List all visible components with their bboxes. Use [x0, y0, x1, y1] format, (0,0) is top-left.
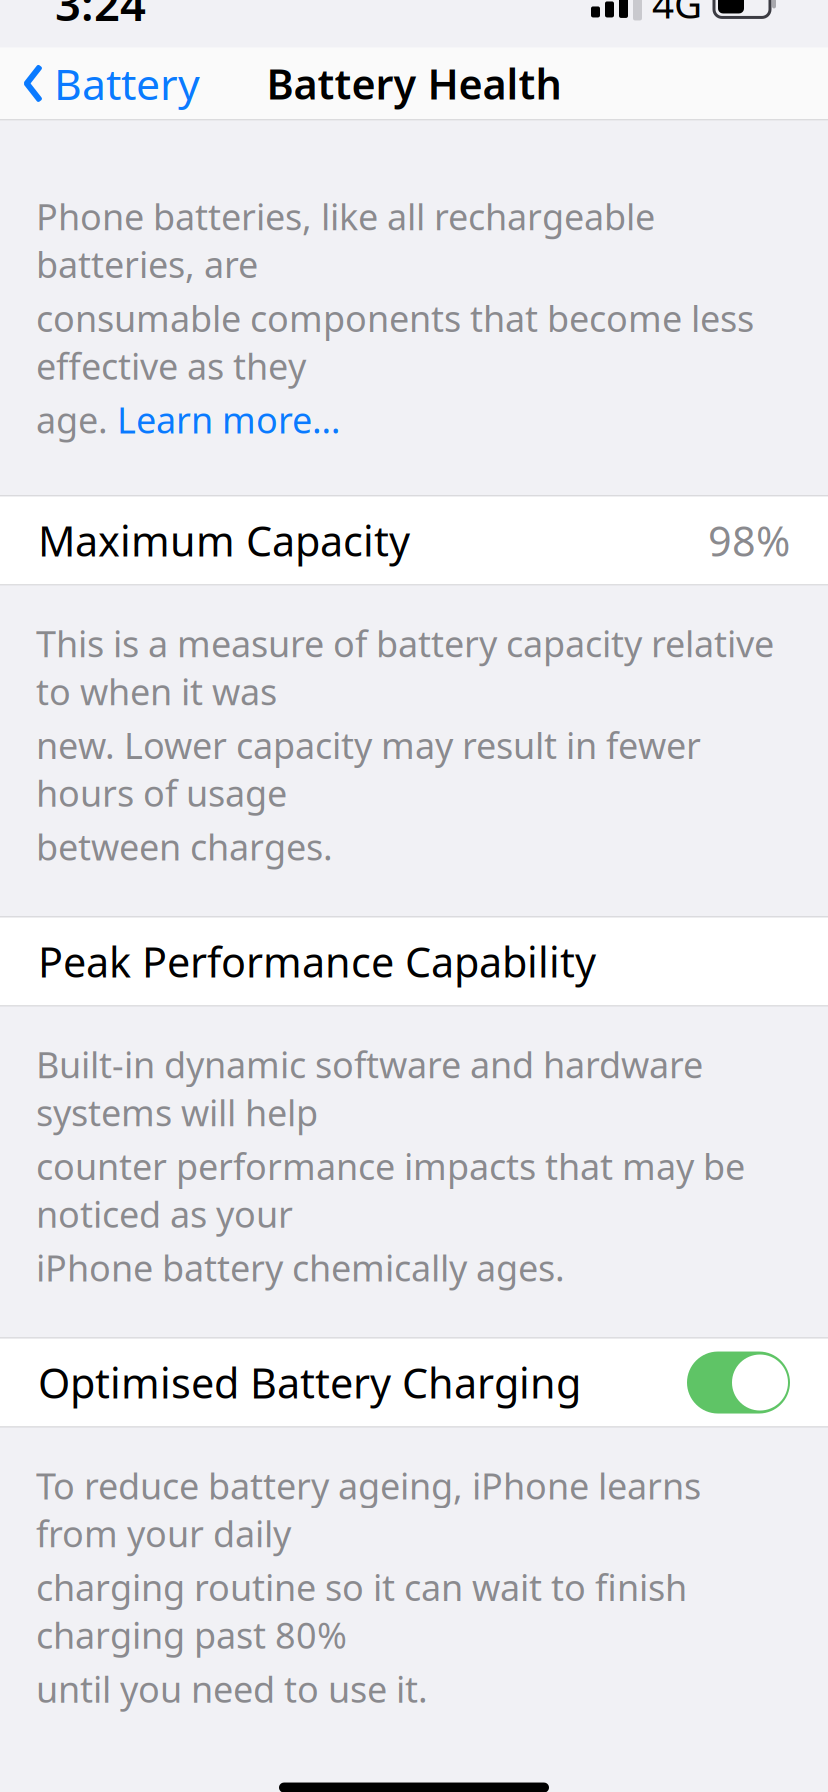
button[interactable]: Optimised Battery Charging	[0, 1338, 828, 1426]
staticText: until you need to use it.	[36, 1665, 428, 1713]
staticText: between charges.	[36, 823, 333, 870]
staticText: consumable components that become less e…	[36, 294, 754, 390]
staticText: counter performance impacts that may be …	[36, 1142, 745, 1238]
button[interactable]: Learn more…	[117, 396, 340, 443]
staticText: Built-in dynamic software and hardware s…	[36, 1040, 703, 1136]
staticText: age.	[36, 396, 117, 443]
button[interactable]: Peak Performance Capability	[0, 917, 828, 1005]
staticText: Optimised Battery Charging	[38, 1355, 581, 1410]
button[interactable]: Maximum Capacity	[0, 496, 828, 584]
staticText: Maximum Capacity	[38, 513, 410, 568]
staticText: charging routine so it can wait to finis…	[36, 1563, 687, 1659]
staticText: Battery Health	[266, 56, 561, 111]
staticText: Battery	[54, 55, 200, 112]
staticText: Phone batteries, like all rechargeable b…	[36, 192, 655, 288]
button[interactable]: Battery	[0, 47, 216, 119]
staticText: Learn more…	[117, 396, 340, 443]
staticText: iPhone battery chemically ages.	[36, 1244, 565, 1291]
staticText: 98%	[708, 513, 790, 568]
staticText: Peak Performance Capability	[38, 934, 596, 989]
staticText: To reduce battery ageing, iPhone learns …	[36, 1461, 701, 1557]
staticText: This is a measure of battery capacity re…	[36, 619, 774, 715]
staticText: 4G	[652, 0, 702, 29]
staticText: new. Lower capacity may result in fewer …	[36, 721, 701, 817]
staticText: 3:24	[55, 0, 146, 33]
